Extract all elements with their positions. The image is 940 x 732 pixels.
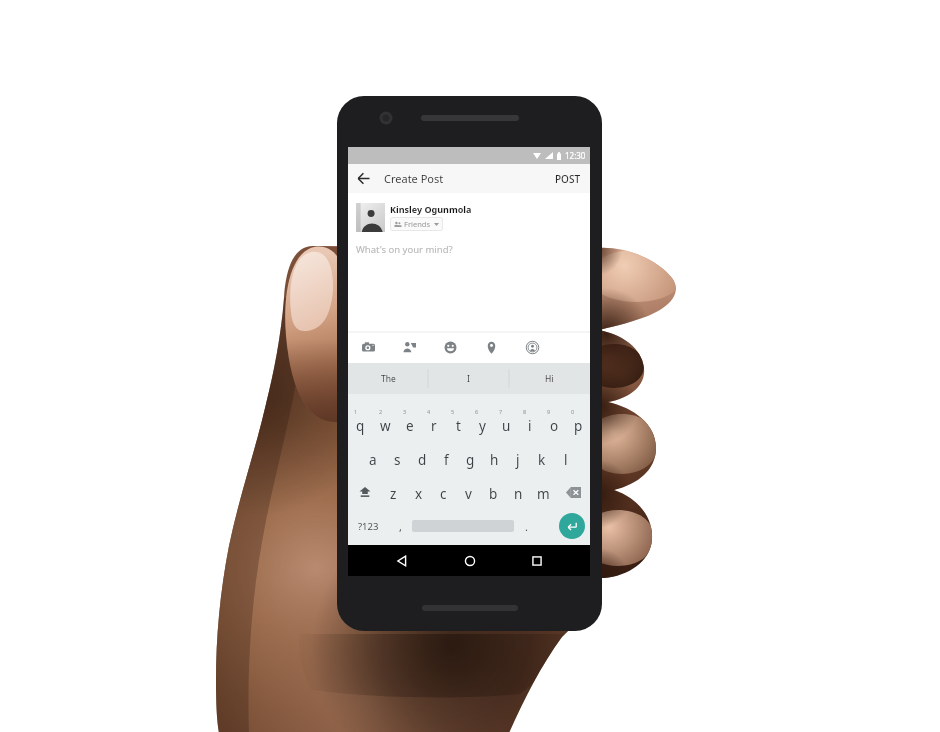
button[interactable]: f — [434, 441, 458, 475]
staticText: h — [490, 451, 499, 469]
button[interactable]: Recents — [503, 545, 570, 576]
staticText: t — [456, 417, 461, 435]
staticText: 0 — [571, 408, 575, 415]
button[interactable]: h — [482, 441, 506, 475]
button[interactable]: Enter — [559, 513, 585, 539]
button[interactable]: d — [410, 441, 434, 475]
staticText: What's on your mind? — [356, 243, 453, 256]
staticText: 7 — [499, 408, 503, 415]
staticText: b — [489, 485, 498, 503]
staticText: 6 — [475, 408, 479, 415]
button[interactable]: Home — [436, 545, 503, 576]
staticText: g — [466, 451, 475, 469]
staticText: Kinsley Ogunmola — [390, 203, 472, 215]
staticText: 4 — [427, 408, 431, 415]
staticText: d — [418, 451, 427, 469]
button[interactable]: n — [506, 475, 531, 509]
button[interactable]: w — [373, 407, 398, 441]
button[interactable]: k — [530, 441, 554, 475]
staticText: v — [465, 485, 472, 503]
staticText: o — [550, 417, 559, 435]
button[interactable]: , — [388, 509, 412, 543]
button[interactable]: s — [385, 441, 410, 475]
button[interactable]: j — [506, 441, 530, 475]
button[interactable]: v — [456, 475, 481, 509]
staticText: p — [574, 417, 583, 435]
button[interactable]: Friends — [390, 217, 443, 231]
staticText: ?123 — [358, 520, 379, 533]
button[interactable]: o — [542, 407, 566, 441]
button[interactable]: p — [566, 407, 590, 441]
button[interactable]: Live video — [512, 332, 553, 363]
button[interactable]: t — [446, 407, 470, 441]
button[interactable]: e — [398, 407, 422, 441]
staticText: Hi — [545, 373, 554, 385]
staticText: j — [516, 451, 520, 469]
staticText: 12:30 — [565, 150, 586, 161]
staticText: z — [390, 485, 397, 503]
button[interactable]: g — [458, 441, 482, 475]
staticText: c — [440, 485, 447, 503]
staticText: a — [369, 451, 377, 469]
button[interactable]: z — [381, 475, 406, 509]
staticText: i — [528, 417, 532, 435]
button[interactable]: y — [470, 407, 494, 441]
staticText: I — [467, 373, 470, 385]
staticText: k — [538, 451, 546, 469]
button[interactable]: Back — [368, 545, 436, 576]
staticText: 9 — [547, 408, 551, 415]
button[interactable]: The — [348, 363, 428, 394]
staticText: , — [399, 519, 402, 534]
staticText: u — [502, 417, 511, 435]
button[interactable]: Back — [348, 164, 379, 193]
button[interactable]: i — [518, 407, 542, 441]
staticText: q — [356, 417, 365, 435]
button[interactable]: u — [494, 407, 518, 441]
staticText: s — [394, 451, 401, 469]
button[interactable]: b — [481, 475, 506, 509]
button[interactable]: . — [514, 509, 538, 543]
button[interactable]: l — [554, 441, 578, 475]
button[interactable]: q — [348, 407, 373, 441]
button[interactable]: POST — [546, 164, 590, 193]
staticText: 5 — [451, 408, 455, 415]
staticText: Friends — [404, 219, 430, 229]
button[interactable]: a — [360, 441, 385, 475]
button[interactable]: Tag people — [389, 332, 430, 363]
staticText: 2 — [379, 408, 383, 415]
staticText: m — [537, 485, 550, 503]
button[interactable]: I — [428, 363, 509, 394]
staticText: e — [406, 417, 414, 435]
staticText: x — [415, 485, 423, 503]
staticText: The — [381, 373, 396, 385]
staticText: . — [525, 519, 528, 534]
button[interactable]: Photo — [348, 332, 389, 363]
staticText: n — [514, 485, 523, 503]
staticText: Create Post — [384, 171, 444, 186]
staticText: r — [431, 417, 437, 435]
button[interactable]: Hi — [509, 363, 590, 394]
button[interactable]: r — [422, 407, 446, 441]
button[interactable]: x — [406, 475, 431, 509]
staticText: w — [380, 417, 391, 435]
button[interactable]: Shift — [348, 475, 381, 509]
staticText: 3 — [403, 408, 407, 415]
button[interactable]: m — [531, 475, 556, 509]
button[interactable]: Feeling — [430, 332, 471, 363]
staticText: f — [444, 451, 449, 469]
staticText: y — [479, 417, 486, 435]
button[interactable]: ?123 — [348, 509, 388, 543]
staticText: l — [564, 451, 568, 469]
button[interactable]: Backspace — [556, 475, 590, 509]
staticText: 8 — [523, 408, 527, 415]
button[interactable]: c — [431, 475, 456, 509]
button[interactable]: Check in — [471, 332, 512, 363]
staticText: 1 — [354, 408, 358, 415]
staticText: POST — [555, 172, 581, 186]
